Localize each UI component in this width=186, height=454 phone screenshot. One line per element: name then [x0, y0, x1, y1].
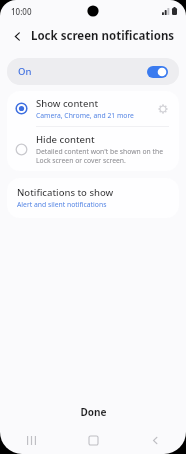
- button[interactable]: Done: [0, 398, 186, 426]
- button[interactable]: Show content: [7, 91, 179, 126]
- staticText: 10:00: [11, 6, 32, 17]
- staticText: Hide content: [36, 133, 95, 146]
- staticText: Alert and silent notifications: [17, 200, 107, 209]
- button[interactable]: Home: [62, 436, 124, 445]
- button[interactable]: Hide content: [7, 127, 179, 171]
- staticText: Show content: [36, 97, 99, 110]
- button[interactable]: Back: [124, 436, 186, 445]
- button[interactable]: Settings: [153, 99, 173, 119]
- button[interactable]: On: [7, 58, 179, 85]
- staticText: Detailed content won't be shown on the L…: [36, 147, 173, 165]
- button[interactable]: Back: [8, 27, 26, 45]
- button[interactable]: Recent apps: [0, 436, 62, 445]
- staticText: On: [18, 65, 32, 78]
- staticText: Camera, Chrome, and 21 more: [36, 111, 134, 120]
- button[interactable]: Notifications to show: [7, 178, 179, 218]
- staticText: Lock screen notifications: [31, 28, 175, 44]
- staticText: Notifications to show: [17, 186, 114, 199]
- staticText: Done: [80, 405, 107, 419]
